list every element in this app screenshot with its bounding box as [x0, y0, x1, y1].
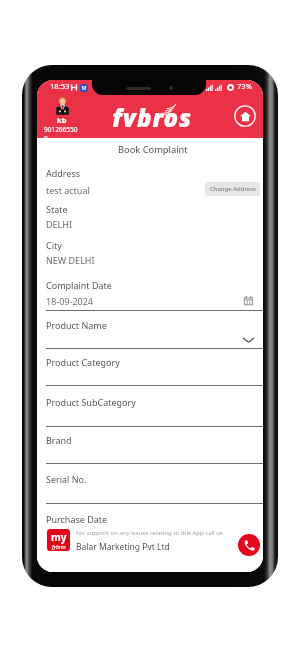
- button[interactable]: [46, 463, 263, 500]
- staticText: 73%: [237, 81, 252, 91]
- staticText: 18:53: [50, 81, 70, 91]
- staticText: Product Name: [46, 319, 107, 331]
- button[interactable]: Change Address: [205, 182, 260, 196]
- staticText: Book Complaint: [118, 143, 188, 156]
- staticText: Complaint Date: [46, 279, 112, 291]
- staticText: kb: [57, 115, 67, 125]
- staticText: Balar Marketing Pvt Ltd: [76, 541, 170, 553]
- staticText: 18-09-2024: [46, 295, 93, 307]
- button[interactable]: [46, 426, 263, 463]
- button[interactable]: [46, 385, 263, 422]
- staticText: For support on any issues relating to th…: [76, 529, 223, 537]
- staticText: Product Category: [46, 356, 120, 368]
- staticText: NEW DELHI: [46, 254, 95, 266]
- staticText: DELHI: [46, 218, 73, 230]
- staticText: Product SubCategory: [46, 396, 136, 408]
- staticText: Address: [46, 167, 81, 179]
- staticText: 9012665500: [44, 125, 80, 140]
- staticText: Brand: [46, 434, 72, 446]
- staticText: fybros: [112, 101, 193, 127]
- staticText: Change Address: [210, 185, 256, 193]
- staticText: Serial No.: [46, 473, 87, 485]
- button[interactable]: [46, 348, 263, 385]
- button[interactable]: Home: [234, 105, 256, 127]
- button[interactable]: myFybros: [47, 529, 70, 551]
- staticText: my: [51, 530, 67, 544]
- button[interactable]: [46, 310, 263, 347]
- staticText: State: [46, 203, 68, 215]
- staticText: fybros: [52, 544, 66, 551]
- button[interactable]: Call support: [238, 534, 260, 556]
- staticText: City: [46, 239, 62, 251]
- button[interactable]: [46, 503, 263, 540]
- staticText: Purchase Date: [46, 513, 108, 525]
- staticText: test actual: [46, 184, 90, 196]
- button[interactable]: kb: [44, 97, 80, 140]
